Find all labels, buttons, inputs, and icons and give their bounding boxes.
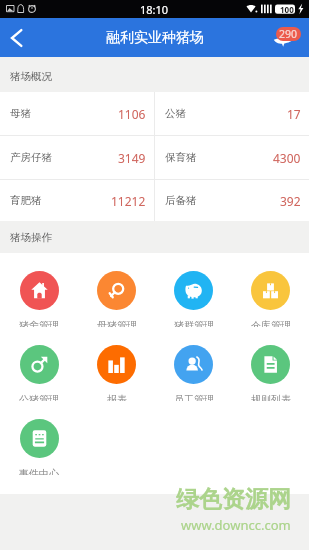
- staticText: 报表: [107, 393, 127, 401]
- staticText: 母猪: [10, 107, 31, 120]
- staticText: 事件中心: [19, 467, 59, 475]
- staticText: 产房仔猪: [10, 151, 52, 164]
- staticText: 290: [279, 27, 298, 41]
- button[interactable]: 育肥猪: [0, 180, 154, 221]
- staticText: 11212: [111, 193, 146, 209]
- staticText: 仓库管理: [251, 319, 291, 327]
- staticText: 3149: [118, 150, 146, 166]
- staticText: 公猪: [165, 107, 186, 120]
- staticText: 4300: [273, 150, 301, 166]
- button[interactable]: 规则列表: [232, 327, 309, 401]
- staticText: 后备猪: [165, 194, 197, 207]
- staticText: 公猪管理: [19, 393, 59, 401]
- staticText: 100: [280, 4, 294, 15]
- button[interactable]: Back: [0, 21, 34, 55]
- staticText: 员工管理: [174, 393, 214, 401]
- button[interactable]: 仓库管理: [232, 253, 309, 327]
- staticText: 猪场概况: [10, 70, 52, 83]
- button[interactable]: 猪舍管理: [0, 253, 78, 327]
- staticText: 猪舍管理: [19, 319, 59, 327]
- staticText: 392: [280, 193, 301, 209]
- staticText: www.downcc.com: [181, 516, 291, 534]
- button[interactable]: 保育猪: [155, 136, 309, 179]
- staticText: 18:10: [140, 2, 169, 17]
- button[interactable]: 公猪: [155, 92, 309, 135]
- staticText: 育肥猪: [10, 194, 42, 207]
- button[interactable]: 员工管理: [155, 327, 232, 401]
- staticText: 绿色资源网: [176, 485, 291, 514]
- button[interactable]: 母猪管理: [78, 253, 155, 327]
- button[interactable]: 母猪: [0, 92, 154, 135]
- staticText: 猪群管理: [174, 319, 214, 327]
- staticText: 保育猪: [165, 151, 197, 164]
- staticText: 融利实业种猪场: [106, 29, 204, 47]
- button[interactable]: 报表: [78, 327, 155, 401]
- staticText: 1106: [118, 106, 146, 122]
- button[interactable]: 公猪管理: [0, 327, 78, 401]
- button[interactable]: 产房仔猪: [0, 136, 154, 179]
- button[interactable]: 后备猪: [155, 180, 309, 221]
- button[interactable]: Messages: [269, 18, 309, 57]
- staticText: 母猪管理: [97, 319, 137, 327]
- button[interactable]: 事件中心: [0, 401, 78, 475]
- staticText: 17: [287, 106, 301, 122]
- button[interactable]: 猪群管理: [155, 253, 232, 327]
- staticText: 规则列表: [251, 393, 291, 401]
- staticText: 猪场操作: [10, 231, 52, 244]
